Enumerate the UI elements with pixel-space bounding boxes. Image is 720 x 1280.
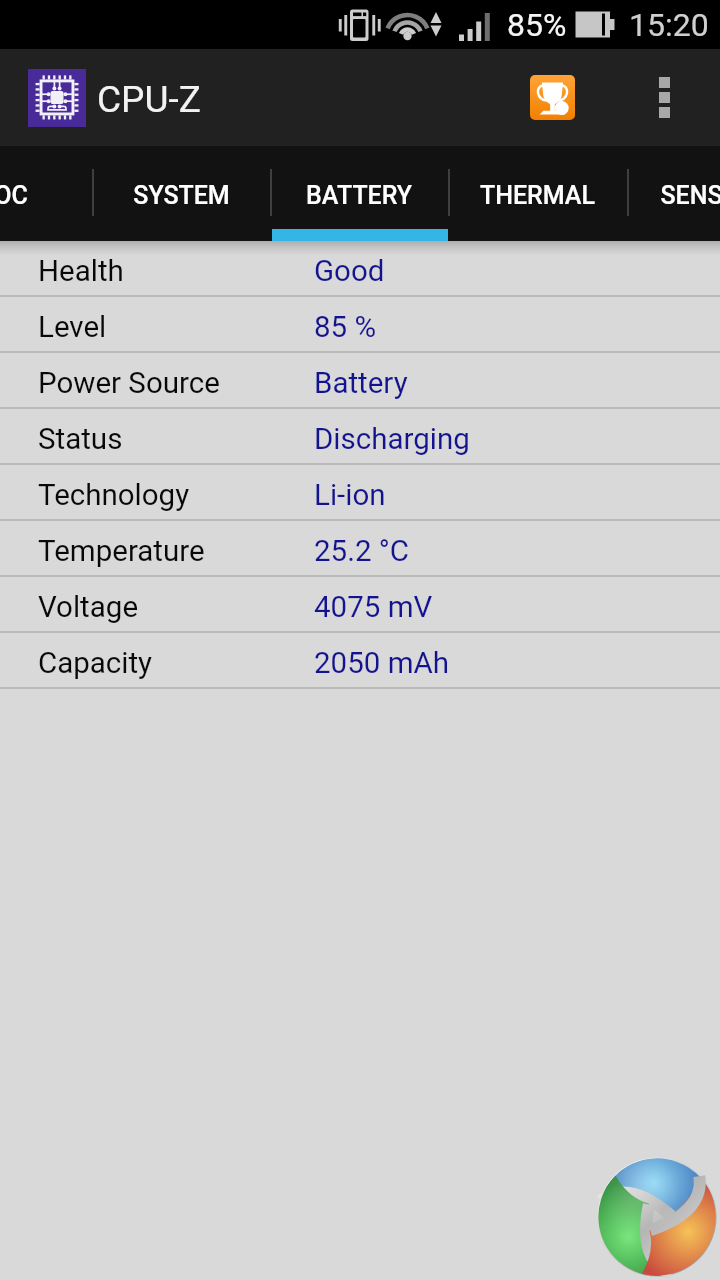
button[interactable]: More options (620, 49, 708, 146)
button[interactable]: SYSTEM (92, 146, 270, 241)
button[interactable]: Achievements (508, 49, 596, 146)
staticText: SYSTEM (133, 181, 230, 210)
staticText: Battery (314, 366, 408, 401)
staticText: 2050 mAh (314, 646, 449, 681)
staticText: 15:20 (629, 6, 709, 44)
button[interactable]: Level (0, 297, 720, 353)
staticText: Capacity (38, 646, 153, 681)
button[interactable]: SOC (0, 146, 92, 241)
button[interactable]: THERMAL (448, 146, 626, 241)
staticText: CPU-Z (97, 78, 201, 121)
staticText: 25.2 °C (314, 534, 410, 569)
button[interactable]: Voltage (0, 577, 720, 633)
staticText: Status (38, 422, 123, 457)
button[interactable]: Technology (0, 465, 720, 521)
staticText: 85 % (314, 310, 377, 345)
staticText: Technology (38, 478, 190, 513)
staticText: Power Source (38, 366, 220, 401)
staticText: Health (38, 254, 124, 289)
staticText: 85% (507, 6, 567, 44)
staticText: Temperature (38, 534, 205, 569)
button[interactable]: Status (0, 409, 720, 465)
button[interactable]: SENSORS (626, 146, 720, 241)
staticText: Discharging (314, 422, 470, 457)
staticText: THERMAL (480, 181, 595, 210)
staticText: SOC (0, 181, 28, 210)
staticText: Level (38, 310, 107, 345)
button[interactable]: Temperature (0, 521, 720, 577)
staticText: Good (314, 254, 385, 289)
button[interactable]: BATTERY (270, 146, 448, 241)
staticText: BATTERY (306, 181, 412, 210)
staticText: Li-ion (314, 478, 386, 513)
staticText: 4075 mV (314, 590, 433, 625)
staticText: Voltage (38, 590, 139, 625)
button[interactable]: Health (0, 241, 720, 297)
staticText: SENSORS (660, 181, 720, 210)
button[interactable]: Capacity (0, 633, 720, 689)
button[interactable]: Power Source (0, 353, 720, 409)
